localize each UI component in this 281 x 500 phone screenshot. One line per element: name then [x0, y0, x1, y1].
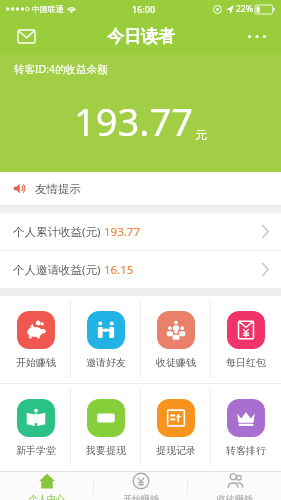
- button[interactable]: 个人中心: [0, 472, 93, 500]
- button[interactable]: 开始赚钱: [94, 472, 187, 500]
- button[interactable]: 友情提示: [0, 172, 281, 205]
- button[interactable]: 开始赚钱: [0, 296, 71, 383]
- button[interactable]: 收徒赚钱: [141, 296, 211, 383]
- staticText: 个人累计收益(元): [13, 224, 104, 240]
- button[interactable]: 每日红包: [211, 296, 281, 383]
- staticText: 193.77: [104, 224, 140, 240]
- button[interactable]: 邀请好友: [71, 296, 141, 383]
- staticText: 新手学堂: [16, 444, 56, 457]
- staticText: 个人邀请收益(元): [13, 262, 104, 278]
- staticText: 16:00: [132, 3, 156, 15]
- staticText: 开始赚钱: [16, 356, 56, 369]
- staticText: 收徒赚钱: [156, 356, 196, 369]
- staticText: 友情提示: [35, 182, 81, 196]
- staticText: 个人中心: [29, 493, 65, 500]
- staticText: 193.77: [74, 95, 193, 147]
- button[interactable]: 个人邀请收益(元): [0, 251, 281, 288]
- staticText: 今日读者: [107, 26, 175, 47]
- button[interactable]: 收徒赚钱: [188, 472, 281, 500]
- staticText: 我要提现: [86, 444, 126, 457]
- staticText: 中国联通: [32, 4, 64, 14]
- button[interactable]: 新手学堂: [0, 384, 71, 471]
- staticText: 16.15: [104, 262, 134, 278]
- button[interactable]: 提现记录: [141, 384, 211, 471]
- button[interactable]: 个人累计收益(元): [0, 213, 281, 250]
- button[interactable]: 转客排行: [211, 384, 281, 471]
- staticText: 转客排行: [226, 444, 266, 457]
- staticText: 转客ID:4的收益余额: [14, 62, 108, 76]
- staticText: 提现记录: [156, 444, 196, 457]
- staticText: 元: [195, 127, 207, 142]
- button[interactable]: Messages: [12, 22, 40, 50]
- staticText: 邀请好友: [86, 356, 126, 369]
- button[interactable]: More options: [243, 22, 271, 50]
- button[interactable]: 我要提现: [71, 384, 141, 471]
- staticText: 每日红包: [226, 356, 266, 369]
- staticText: 22%: [236, 3, 253, 15]
- staticText: 收徒赚钱: [217, 493, 253, 500]
- staticText: 开始赚钱: [123, 493, 159, 500]
